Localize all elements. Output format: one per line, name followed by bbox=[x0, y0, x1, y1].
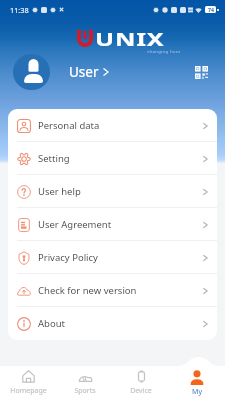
button[interactable]: About bbox=[8, 307, 217, 340]
staticText: Sports bbox=[74, 386, 96, 396]
staticText: Check for new version bbox=[38, 284, 137, 297]
button[interactable]: User help bbox=[8, 175, 217, 208]
staticText: My bbox=[192, 387, 202, 397]
button[interactable]: Setting bbox=[8, 142, 217, 175]
staticText: UNIX bbox=[95, 27, 165, 49]
button[interactable]: Homepage bbox=[0, 366, 57, 400]
staticText: 11:38 bbox=[10, 5, 29, 15]
button[interactable]: User bbox=[69, 63, 109, 81]
staticText: Homepage bbox=[10, 386, 47, 396]
staticText: 74 bbox=[208, 6, 214, 13]
staticText: User Agreement bbox=[38, 218, 112, 231]
button[interactable]: Personal data bbox=[8, 109, 217, 142]
staticText: User bbox=[69, 63, 99, 81]
staticText: Personal data bbox=[38, 119, 100, 132]
staticText: Privacy Policy bbox=[38, 251, 98, 264]
staticText: User help bbox=[38, 185, 81, 198]
staticText: About bbox=[38, 317, 65, 330]
button[interactable]: My bbox=[169, 366, 225, 400]
staticText: Setting bbox=[38, 152, 70, 165]
staticText: Device bbox=[130, 386, 152, 396]
button[interactable]: User Agreement bbox=[8, 208, 217, 241]
button[interactable]: Device bbox=[113, 366, 169, 400]
button[interactable]: Check for new version bbox=[8, 274, 217, 307]
button[interactable]: Privacy Policy bbox=[8, 241, 217, 274]
button[interactable]: Scan QR code bbox=[190, 61, 212, 83]
staticText: changing lives bbox=[147, 49, 181, 55]
button[interactable]: Sports bbox=[57, 366, 113, 400]
